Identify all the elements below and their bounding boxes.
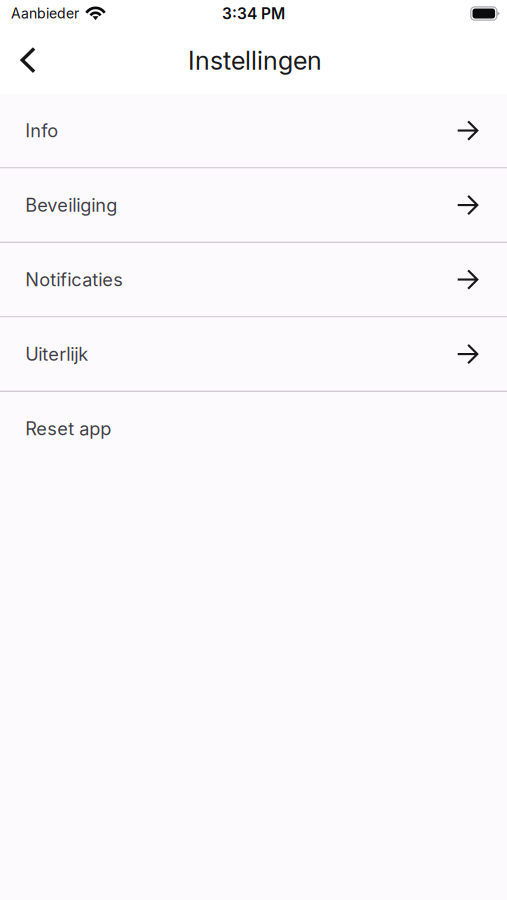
- staticText: Notificaties: [25, 269, 123, 290]
- staticText: Beveiliging: [25, 194, 117, 216]
- staticText: Info: [25, 120, 58, 141]
- staticText: Instellingen: [188, 45, 322, 76]
- button[interactable]: Uiterlijk: [0, 317, 507, 391]
- staticText: Uiterlijk: [25, 343, 88, 365]
- staticText: 3:34 PM: [222, 4, 285, 23]
- button[interactable]: Notificaties: [0, 243, 507, 316]
- button[interactable]: Reset app: [0, 392, 507, 465]
- button[interactable]: Beveiliging: [0, 168, 507, 242]
- staticText: Aanbieder: [11, 5, 79, 22]
- staticText: Reset app: [25, 418, 111, 439]
- button[interactable]: Info: [0, 94, 507, 167]
- button[interactable]: Back: [4, 36, 52, 84]
